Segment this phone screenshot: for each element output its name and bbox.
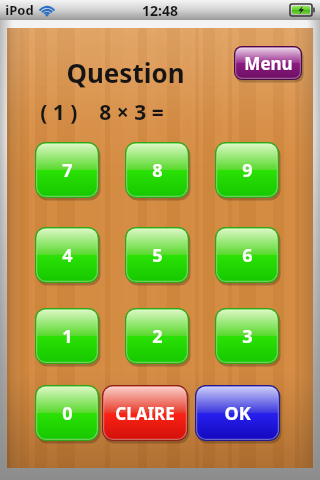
button[interactable]: CLAIRE — [102, 385, 188, 441]
staticText: ( 1 ) 8 × 3 = — [40, 98, 164, 127]
staticText: 2 — [152, 324, 163, 349]
button[interactable]: 9 — [215, 142, 279, 198]
button[interactable]: 7 — [35, 142, 99, 198]
staticText: Menu — [244, 52, 293, 75]
staticText: 6 — [242, 243, 253, 268]
staticText: Question — [66, 55, 185, 90]
button[interactable]: 6 — [215, 227, 279, 283]
staticText: OK — [224, 401, 251, 426]
button[interactable]: Menu — [234, 46, 302, 80]
staticText: 8 — [152, 158, 163, 183]
staticText: 1 — [62, 324, 73, 349]
button[interactable]: 5 — [125, 227, 189, 283]
staticText: 12:48 — [142, 1, 178, 20]
staticText: iPod — [5, 1, 34, 19]
button[interactable]: 3 — [215, 308, 279, 364]
button[interactable]: 0 — [35, 385, 99, 441]
button[interactable]: 4 — [35, 227, 99, 283]
staticText: 3 — [242, 324, 253, 349]
staticText: 5 — [152, 243, 163, 268]
staticText: 9 — [242, 158, 253, 183]
button[interactable]: 1 — [35, 308, 99, 364]
staticText: 0 — [62, 401, 73, 426]
button[interactable]: OK — [195, 385, 280, 441]
staticText: CLAIRE — [115, 402, 175, 425]
staticText: 4 — [62, 243, 73, 268]
button[interactable]: 2 — [125, 308, 189, 364]
staticText: 7 — [62, 158, 73, 183]
button[interactable]: 8 — [125, 142, 189, 198]
